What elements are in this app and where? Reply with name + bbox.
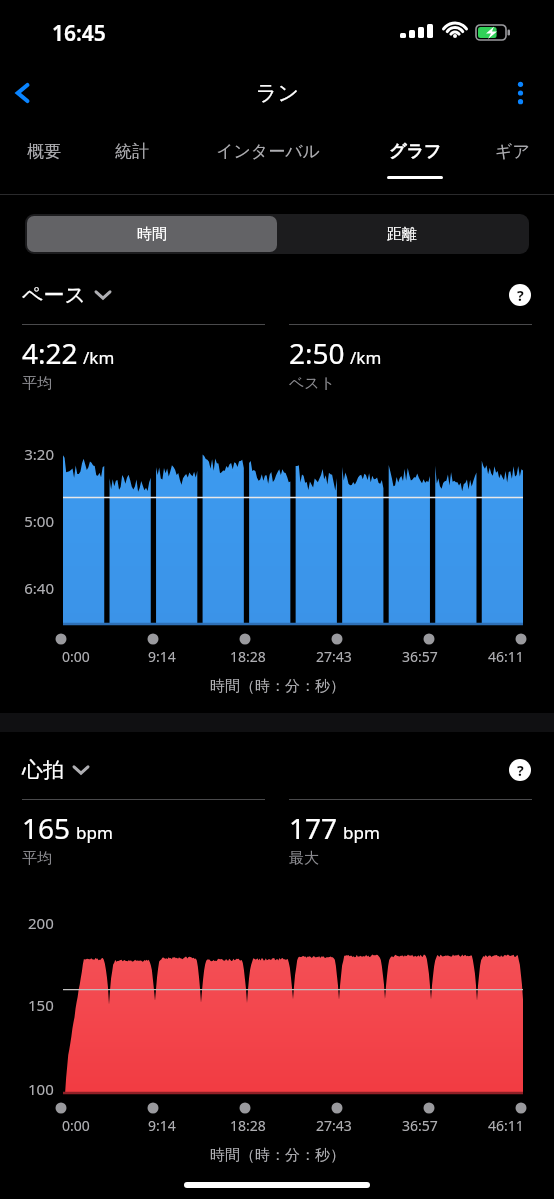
- button[interactable]: 統計: [88, 124, 176, 194]
- staticText: 心拍: [22, 757, 64, 783]
- staticText: 0:00: [62, 647, 90, 666]
- staticText: 3:20: [24, 444, 54, 464]
- button[interactable]: Help: [508, 283, 532, 307]
- staticText: 36:57: [402, 647, 438, 666]
- staticText: 18:28: [230, 1116, 266, 1135]
- button[interactable]: ペース: [22, 282, 111, 308]
- staticText: 6:40: [24, 578, 54, 598]
- staticText: 46:11: [488, 1116, 524, 1135]
- staticText: bpm: [343, 821, 380, 844]
- staticText: ベスト: [289, 374, 336, 393]
- button[interactable]: 心拍: [22, 757, 89, 783]
- staticText: グラフ: [389, 141, 442, 162]
- staticText: ?: [517, 761, 524, 780]
- staticText: 平均: [22, 849, 52, 868]
- button[interactable]: 概要: [0, 124, 88, 194]
- button[interactable]: 距離: [277, 216, 527, 252]
- staticText: 2:50: [289, 334, 345, 372]
- staticText: 概要: [27, 141, 61, 162]
- staticText: インターバル: [216, 141, 320, 162]
- staticText: 4:22: [22, 334, 78, 372]
- staticText: 177: [289, 809, 338, 847]
- staticText: 46:11: [488, 647, 524, 666]
- staticText: 27:43: [316, 1116, 352, 1135]
- staticText: ペース: [22, 282, 86, 308]
- staticText: ?: [517, 286, 524, 305]
- staticText: 9:14: [148, 1116, 176, 1135]
- staticText: 統計: [115, 141, 149, 162]
- staticText: 平均: [22, 374, 52, 393]
- staticText: 時間（時：分：秒）: [210, 1146, 345, 1165]
- staticText: 16:45: [52, 19, 106, 48]
- button[interactable]: インターバル: [176, 124, 359, 194]
- staticText: 時間: [137, 225, 167, 244]
- staticText: 18:28: [230, 647, 266, 666]
- staticText: /km: [83, 346, 115, 369]
- button[interactable]: Help: [508, 758, 532, 782]
- button[interactable]: グラフ: [359, 124, 471, 194]
- button[interactable]: Back: [0, 70, 46, 116]
- staticText: /km: [350, 346, 382, 369]
- staticText: 時間（時：分：秒）: [210, 677, 345, 696]
- staticText: 150: [28, 995, 54, 1015]
- staticText: ラン: [256, 80, 299, 106]
- staticText: ギア: [495, 141, 530, 162]
- staticText: 100: [28, 1079, 54, 1099]
- button[interactable]: ギア: [471, 124, 554, 194]
- button[interactable]: More options: [498, 71, 542, 115]
- staticText: 最大: [289, 849, 319, 868]
- staticText: 距離: [387, 225, 417, 244]
- button[interactable]: 時間: [27, 216, 277, 252]
- staticText: 36:57: [402, 1116, 438, 1135]
- staticText: 200: [28, 913, 54, 933]
- staticText: 27:43: [316, 647, 352, 666]
- staticText: 5:00: [24, 511, 54, 531]
- staticText: 165: [22, 809, 71, 847]
- staticText: 9:14: [148, 647, 176, 666]
- staticText: 0:00: [62, 1116, 90, 1135]
- staticText: bpm: [76, 821, 113, 844]
